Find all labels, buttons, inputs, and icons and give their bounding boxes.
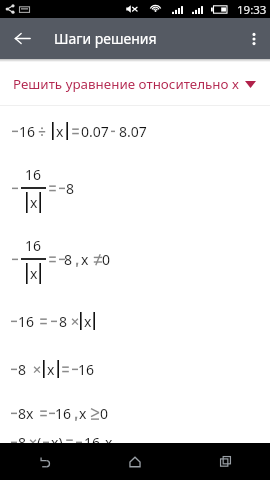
staticText: x: [30, 193, 38, 212]
staticText: 8.07: [119, 122, 147, 140]
staticText: 8x: [18, 404, 34, 422]
staticText: x: [47, 360, 55, 378]
staticText: 8: [18, 433, 27, 451]
button[interactable]: Home: [90, 443, 180, 480]
staticText: 16: [18, 312, 35, 330]
staticText: Решить уравнение относительно х: [13, 75, 239, 93]
staticText: x: [56, 122, 64, 140]
staticText: x: [81, 250, 89, 268]
staticText: 0: [102, 250, 111, 268]
staticText: x: [79, 404, 87, 422]
staticText: 8: [66, 179, 75, 197]
staticText: x: [30, 264, 38, 283]
staticText: 0: [100, 404, 109, 422]
staticText: 16: [84, 433, 101, 451]
staticText: 8: [18, 360, 27, 378]
button[interactable]: More options: [237, 18, 270, 59]
button[interactable]: Решить уравнение относительно х: [0, 62, 270, 106]
staticText: x): [51, 433, 63, 451]
staticText: 16: [78, 360, 95, 378]
staticText: 8: [64, 250, 73, 268]
staticText: x: [105, 433, 113, 451]
staticText: 16: [25, 236, 42, 255]
button[interactable]: Recent apps: [180, 443, 270, 480]
staticText: 19:33: [237, 2, 267, 18]
staticText: 16: [19, 122, 36, 140]
staticText: Шаги решения: [54, 29, 157, 48]
staticText: 8: [59, 312, 68, 330]
staticText: (: [37, 433, 42, 451]
staticText: 16: [25, 165, 42, 184]
staticText: 16: [55, 404, 72, 422]
staticText: x: [84, 312, 92, 330]
staticText: 0.07: [81, 122, 109, 140]
button[interactable]: Back: [0, 443, 90, 480]
button[interactable]: Back: [0, 18, 44, 59]
